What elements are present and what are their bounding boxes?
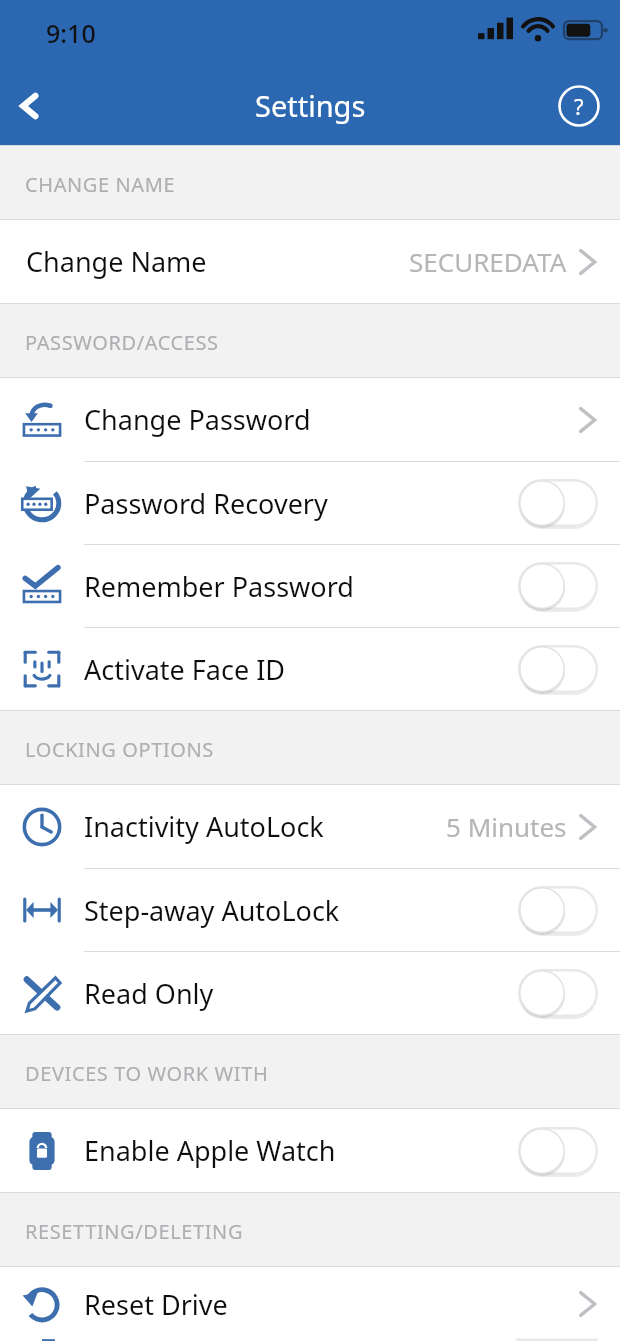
staticText: Enable Apple Watch [84,1132,336,1169]
staticText: Step-away AutoLock [84,892,340,929]
button[interactable]: Read Only [0,951,620,1034]
staticText: Activate Face ID [84,651,286,688]
staticText: ? [574,91,584,121]
button[interactable]: Help [552,79,606,133]
staticText: SECUREDATA [409,244,567,279]
button[interactable]: Activate Face ID [0,627,620,710]
staticText: DEVICES TO WORK WITH [25,1060,269,1087]
staticText: PASSWORD/ACCESS [25,329,219,356]
staticText: RESETTING/DELETING [25,1218,244,1245]
staticText: 5 Minutes [446,809,567,844]
staticText: Change Name [26,243,207,280]
button[interactable]: Inactivity AutoLock [0,785,620,868]
staticText: Read Only [84,975,214,1012]
staticText: Change Password [84,401,311,438]
staticText: Password Recovery [84,485,328,522]
staticText: 9:10 [46,16,96,50]
staticText: Inactivity AutoLock [84,808,324,845]
staticText: LOCKING OPTIONS [25,736,214,763]
staticText: CHANGE NAME [25,171,176,198]
button[interactable]: Reset Drive [0,1267,620,1341]
button[interactable]: Remember Password [0,544,620,627]
button[interactable]: Change Name [0,220,620,303]
button[interactable]: Back [0,71,60,141]
button[interactable]: Enable Apple Watch [0,1109,620,1192]
staticText: Settings [255,86,366,125]
staticText: Remember Password [84,568,354,605]
button[interactable]: Change Password [0,378,620,461]
staticText: Reset Drive [84,1286,228,1323]
button[interactable]: Password Recovery [0,461,620,544]
button[interactable]: Step-away AutoLock [0,868,620,951]
